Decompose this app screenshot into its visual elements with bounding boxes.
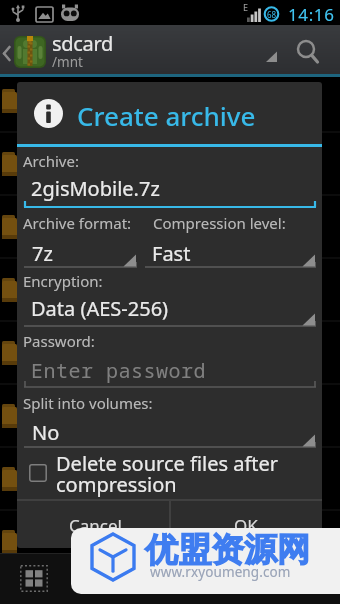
button[interactable] [0, 25, 130, 74]
button[interactable] [24, 355, 316, 388]
staticText: Create archive [77, 98, 256, 133]
staticText: 2gisMobile.7z [31, 175, 160, 202]
staticText: 14:16 [288, 3, 335, 26]
staticText: Enter password [31, 357, 206, 384]
staticText: Archive format: [23, 213, 132, 233]
staticText: Password: [23, 331, 95, 351]
staticText: 68 [267, 9, 277, 20]
staticText: Split into volumes: [23, 393, 153, 413]
staticText: Fast [152, 240, 191, 267]
button[interactable]: OK [170, 500, 322, 548]
staticText: Compression level: [153, 213, 286, 233]
button[interactable]: Cancel [17, 500, 169, 548]
staticText: Encryption: [23, 271, 103, 291]
button[interactable] [24, 174, 316, 209]
staticText: OK [234, 514, 258, 537]
staticText: compression [56, 471, 177, 498]
button[interactable] [145, 238, 316, 269]
staticText: Cancel [69, 514, 122, 537]
button[interactable] [24, 456, 316, 499]
staticText: Delete source files after [56, 450, 279, 477]
staticText: sdcard [52, 30, 114, 57]
staticText: www.rxyoumeng.com [150, 563, 291, 581]
staticText: Archive: [23, 151, 79, 171]
staticText: Data (AES-256) [31, 295, 169, 322]
staticText: No [32, 419, 60, 446]
staticText: 7z [32, 240, 53, 267]
button[interactable] [20, 565, 48, 592]
button[interactable] [24, 238, 137, 269]
staticText: 优盟资源网 [145, 529, 310, 571]
button[interactable] [24, 418, 316, 449]
button[interactable] [24, 296, 316, 327]
staticText: /mnt [52, 53, 83, 71]
button[interactable] [288, 32, 326, 70]
staticText: E [243, 1, 249, 13]
